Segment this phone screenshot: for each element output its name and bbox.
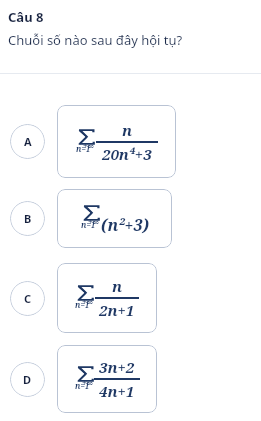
staticText: n=1 <box>75 380 90 391</box>
staticText: +∞ <box>82 377 94 388</box>
staticText: C <box>24 291 32 306</box>
staticText: (n²+3) <box>101 214 149 236</box>
staticText: Chuỗi số nào sau đây hội tụ? <box>8 31 183 49</box>
staticText: Câu 8 <box>8 8 44 26</box>
staticText: +∞ <box>82 296 94 307</box>
button[interactable]: D <box>0 345 261 413</box>
staticText: n=1 <box>76 143 91 154</box>
staticText: A <box>24 134 32 149</box>
staticText: B <box>24 211 32 226</box>
staticText: 20n⁴+3 <box>102 144 152 164</box>
staticText: n <box>112 276 123 296</box>
staticText: n <box>122 120 133 140</box>
staticText: D <box>23 372 32 387</box>
button[interactable]: B <box>0 189 261 248</box>
staticText: +∞ <box>83 140 95 151</box>
button[interactable]: A <box>0 105 261 178</box>
button[interactable]: C <box>0 263 261 333</box>
staticText: 2n+1 <box>99 300 135 320</box>
staticText: n=1 <box>81 219 96 230</box>
staticText: 3n+2 <box>99 357 135 377</box>
staticText: +∞ <box>88 216 100 227</box>
staticText: 4n+1 <box>99 381 135 401</box>
staticText: n=1 <box>75 299 90 310</box>
